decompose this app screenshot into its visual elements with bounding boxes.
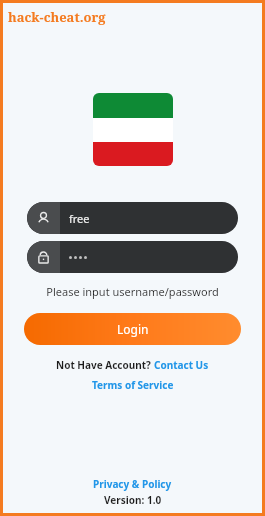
staticText: Not Have Account? — [56, 358, 154, 372]
staticText: Contact Us — [154, 358, 209, 372]
staticText: hack-cheat.org — [8, 8, 106, 26]
button[interactable]: Username — [27, 202, 238, 234]
other: Password — [36, 250, 51, 265]
other: Username — [36, 211, 51, 226]
staticText: Login — [117, 321, 149, 337]
staticText: Version: 1.0 — [104, 493, 162, 507]
staticText: Terms of Service — [92, 378, 174, 392]
button[interactable]: Privacy & Policy — [93, 477, 172, 491]
button[interactable]: Contact Us — [154, 358, 209, 372]
button[interactable]: Login — [24, 313, 241, 345]
button[interactable]: Password — [27, 241, 238, 273]
staticText: free — [69, 211, 90, 226]
staticText: Please input username/password — [46, 284, 219, 299]
button[interactable]: Terms of Service — [92, 378, 174, 392]
staticText: Privacy & Policy — [93, 477, 172, 491]
